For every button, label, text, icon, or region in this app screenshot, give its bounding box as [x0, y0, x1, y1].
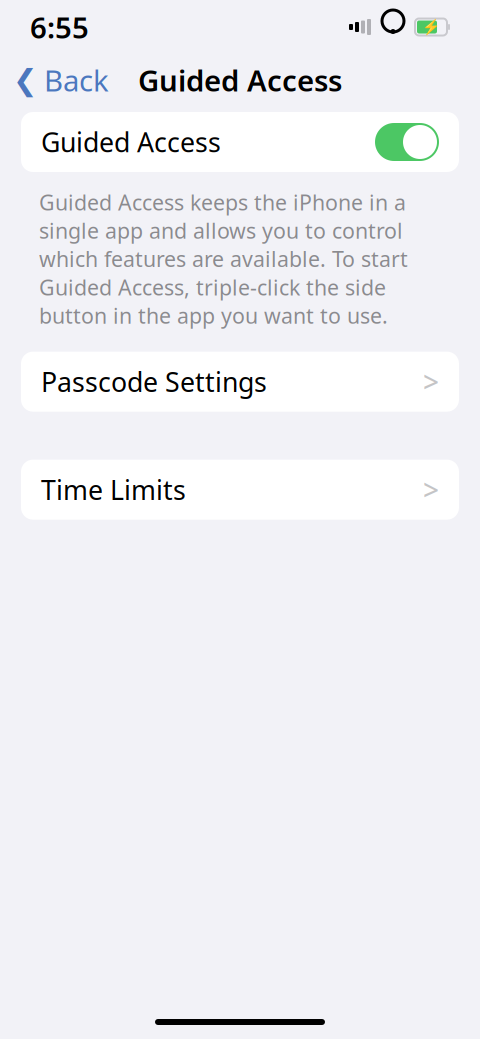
button[interactable]: ❮ [0, 54, 122, 105]
staticText: ⚡ [422, 19, 440, 35]
staticText: > [423, 471, 439, 508]
staticText: > [423, 363, 439, 400]
staticText: Time Limits [41, 472, 186, 507]
staticText: Passcode Settings [41, 364, 267, 399]
staticText: Guided Access keeps the iPhone in a sing… [39, 188, 408, 330]
staticText: Guided Access [138, 60, 342, 99]
button[interactable]: Guided Access [21, 112, 459, 172]
staticText: 6:55 [30, 7, 89, 46]
staticText: Guided Access [41, 124, 221, 160]
button[interactable]: Time Limits [21, 460, 459, 520]
staticText: Back [44, 60, 109, 99]
staticText: ❮ [13, 63, 38, 97]
button[interactable]: Passcode Settings [21, 352, 459, 412]
